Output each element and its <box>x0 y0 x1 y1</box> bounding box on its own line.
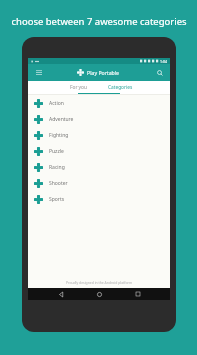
button[interactable]: For you <box>57 81 99 93</box>
button[interactable]: Recent apps <box>132 288 144 300</box>
button[interactable]: Open navigation menu <box>33 67 44 78</box>
staticText: For you <box>70 84 87 91</box>
staticText: Shooter <box>49 180 68 187</box>
staticText: Proudly designed in the Android platform <box>66 280 133 285</box>
button[interactable]: Categories <box>99 81 141 93</box>
button[interactable]: Back <box>55 288 67 300</box>
button[interactable]: Sports <box>28 191 170 207</box>
button[interactable]: Home <box>93 288 105 300</box>
staticText: Action <box>49 100 64 107</box>
button[interactable]: Adventure <box>28 111 170 127</box>
button[interactable]: Fighting <box>28 127 170 143</box>
staticText: Racing <box>49 164 65 171</box>
staticText: Categories <box>108 84 133 91</box>
staticText: Puzzle <box>49 148 64 155</box>
button[interactable]: Racing <box>28 159 170 175</box>
button[interactable]: Shooter <box>28 175 170 191</box>
button[interactable]: Puzzle <box>28 143 170 159</box>
staticText: 1:04 <box>160 59 167 64</box>
staticText: Fighting <box>49 132 69 139</box>
staticText: Sports <box>49 196 65 203</box>
staticText: Adventure <box>49 116 74 123</box>
button[interactable]: Search <box>154 67 165 78</box>
staticText: Play Portable <box>87 69 120 76</box>
button[interactable]: Action <box>28 95 170 111</box>
staticText: choose between 7 awesome categories <box>11 15 187 28</box>
